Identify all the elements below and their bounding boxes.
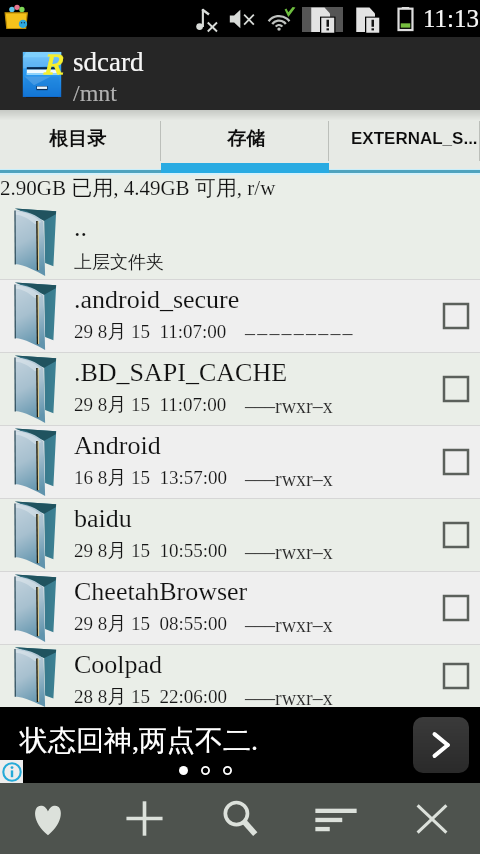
staticText: –––rwxr–x (245, 687, 333, 709)
staticText: 上层文件夹 (74, 251, 164, 274)
staticText: EXTERNAL_S... (351, 129, 478, 148)
staticText: 11:13 (423, 5, 480, 33)
staticText: CheetahBrowser (74, 577, 248, 606)
button[interactable]: EXTERNAL_S... (329, 110, 480, 175)
staticText: 29 8月 15 10:55:00 (74, 539, 228, 563)
staticText: 根目录 (49, 127, 106, 151)
button[interactable]: Close (384, 783, 480, 854)
button[interactable]: 根目录 (0, 110, 161, 175)
staticText: –––rwxr–x (245, 468, 333, 490)
button[interactable]: Next advert (413, 717, 469, 773)
staticText: 29 8月 15 08:55:00 (74, 612, 228, 636)
button[interactable]: 状态回神,两点不二. (0, 707, 480, 783)
button[interactable]: Select baidu (432, 511, 480, 559)
button[interactable]: Favorites (0, 783, 96, 854)
staticText: 29 8月 15 11:07:00 (74, 393, 227, 417)
button[interactable]: Search (192, 783, 288, 854)
button[interactable]: Coolpad (0, 645, 480, 707)
button[interactable]: Select CheetahBrowser (432, 584, 480, 632)
staticText: .BD_SAPI_CACHE (74, 358, 288, 387)
staticText: R (43, 48, 63, 80)
staticText: Coolpad (74, 650, 163, 679)
staticText: .android_secure (74, 285, 240, 314)
staticText: 29 8月 15 11:07:00 (74, 320, 227, 344)
button[interactable]: CheetahBrowser (0, 572, 480, 644)
button[interactable]: Select .android_secure (432, 292, 480, 340)
button[interactable]: R (0, 37, 480, 110)
staticText: 16 8月 15 13:57:00 (74, 466, 228, 490)
staticText: /mnt (73, 80, 118, 107)
button[interactable]: Select Android (432, 438, 480, 486)
staticText: sdcard (73, 47, 144, 77)
staticText: Android (74, 431, 161, 460)
staticText: –––rwxr–x (245, 541, 333, 563)
button[interactable]: Add (96, 783, 192, 854)
staticText: 状态回神,两点不二. (20, 723, 258, 758)
button[interactable]: Android (0, 426, 480, 498)
staticText: –––rwxr–x (245, 395, 333, 417)
staticText: ––––––––– (245, 322, 355, 344)
staticText: 存储 (227, 127, 265, 151)
button[interactable]: baidu (0, 499, 480, 571)
button[interactable]: .. (0, 206, 480, 279)
button[interactable]: Select .BD_SAPI_CACHE (432, 365, 480, 413)
button[interactable]: .BD_SAPI_CACHE (0, 353, 480, 425)
staticText: 2.90GB 已用, 4.49GB 可用, r/w (0, 175, 276, 201)
staticText: .. (74, 213, 87, 242)
staticText: –––rwxr–x (245, 614, 333, 636)
button[interactable]: Ad information (0, 760, 23, 783)
staticText: 28 8月 15 22:06:00 (74, 685, 228, 709)
staticText: baidu (74, 504, 132, 533)
button[interactable]: Select Coolpad (432, 652, 480, 700)
button[interactable]: Sort (288, 783, 384, 854)
button[interactable]: .android_secure (0, 280, 480, 352)
button[interactable]: 存储 (161, 110, 329, 175)
